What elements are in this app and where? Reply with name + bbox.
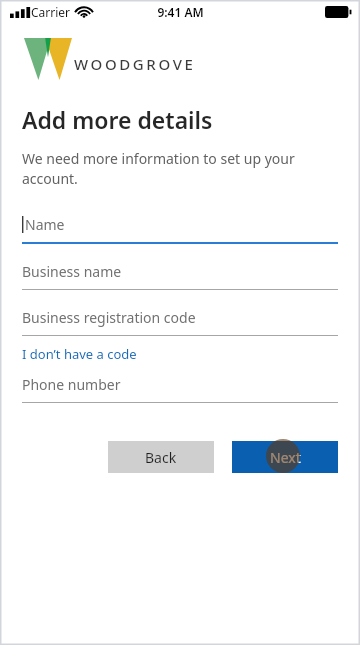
button[interactable]: Business name [22, 262, 338, 290]
staticText: Business name [22, 262, 122, 281]
staticText: Add more details [22, 104, 213, 135]
other: Tap indicator [263, 437, 303, 477]
button[interactable]: Name [22, 215, 338, 244]
button[interactable]: Phone number [22, 375, 338, 403]
staticText: Phone number [22, 375, 121, 394]
staticText: Name [25, 215, 65, 234]
button[interactable]: Back [108, 441, 214, 473]
staticText: Back [145, 448, 177, 467]
staticText: We need more information to set up your … [22, 149, 295, 189]
staticText: I don’t have a code [22, 345, 137, 363]
button[interactable]: I don’t have a code [22, 345, 137, 363]
staticText: Business registration code [22, 308, 196, 327]
staticText: Carrier [31, 4, 71, 20]
staticText: Next [270, 448, 301, 467]
button[interactable]: Business registration code [22, 308, 338, 336]
staticText: WOODGROVE [74, 54, 196, 74]
staticText: 9:41 AM [157, 4, 204, 20]
button[interactable]: Next [232, 441, 338, 473]
